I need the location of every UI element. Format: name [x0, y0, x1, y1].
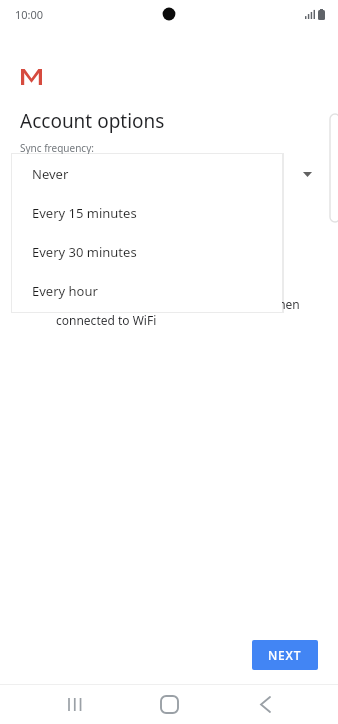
staticText: Sync email from this account	[56, 248, 218, 264]
button[interactable]: Every 15 minutes	[12, 193, 282, 232]
staticText: Never	[32, 165, 69, 183]
button[interactable]: Recent apps	[58, 687, 92, 721]
button[interactable]: Notify me when email arrives	[0, 200, 324, 216]
staticText: 10:00	[15, 7, 44, 22]
staticText: Every 30 minutes	[32, 243, 137, 261]
staticText: Every hour	[32, 282, 98, 300]
staticText: Sync frequency:	[20, 141, 94, 155]
button[interactable]: Every 30 minutes	[12, 232, 282, 271]
other: Open sync frequency dropdown	[300, 167, 314, 181]
button[interactable]: Home	[152, 687, 186, 721]
staticText: Account options	[20, 108, 165, 134]
button[interactable]: Never	[0, 158, 338, 190]
staticText: NEXT	[268, 647, 302, 663]
button[interactable]: Sync email from this account	[0, 248, 324, 264]
staticText: Notify me when email arrives	[56, 200, 221, 216]
button[interactable]: Automatically download attachments when …	[0, 296, 324, 329]
staticText: Never	[20, 165, 57, 183]
staticText: Every 15 minutes	[32, 204, 137, 222]
button[interactable]: Every hour	[12, 271, 282, 310]
button[interactable]: Never	[12, 154, 282, 193]
button[interactable]: Back	[248, 687, 282, 721]
staticText: Automatically download attachments when …	[56, 296, 300, 329]
button[interactable]: NEXT	[252, 640, 318, 670]
